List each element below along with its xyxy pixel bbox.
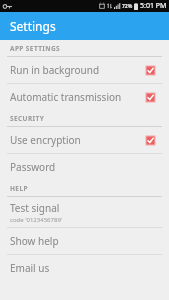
staticText: Test signal — [10, 201, 60, 215]
staticText: Show help — [10, 234, 59, 248]
staticText: code '0123456789' — [10, 216, 63, 224]
button[interactable]: Automatic transmission — [0, 84, 169, 110]
staticText: Email us — [10, 261, 50, 275]
staticText: Settings — [10, 18, 56, 34]
button[interactable]: Password — [0, 154, 169, 180]
button[interactable]: Use encryption — [0, 127, 169, 153]
button[interactable]: Test signal — [0, 197, 169, 227]
staticText: 72% — [122, 3, 133, 10]
button[interactable]: Run in background — [0, 57, 169, 83]
staticText: APP SETTINGS — [10, 44, 61, 53]
staticText: HELP — [10, 184, 28, 193]
button[interactable]: Toggle Run in background — [141, 61, 159, 79]
staticText: 5:01 PM — [140, 1, 167, 11]
staticText: Automatic transmission — [10, 90, 122, 104]
button[interactable]: Email us — [0, 255, 169, 281]
staticText: Run in background — [10, 63, 100, 77]
button[interactable]: Toggle Use encryption — [141, 131, 159, 149]
staticText: Password — [10, 160, 56, 174]
button[interactable]: Toggle Automatic transmission — [141, 88, 159, 106]
staticText: SECURITY — [10, 114, 45, 123]
button[interactable]: Show help — [0, 228, 169, 254]
staticText: Use encryption — [10, 133, 81, 147]
